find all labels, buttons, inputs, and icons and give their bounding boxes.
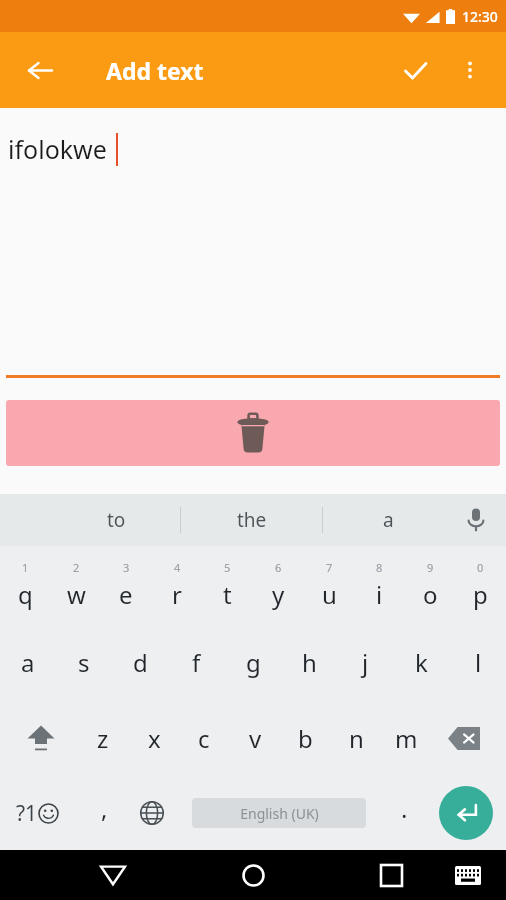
button[interactable]: x [129,700,179,776]
button[interactable]: s [59,624,109,700]
staticText: English (UK) [240,804,319,823]
button[interactable]: Change keyboard language [128,778,176,848]
button[interactable]: k [396,624,446,700]
button[interactable]: ifolokwe [0,108,506,384]
staticText: 9 [427,560,434,575]
staticText: 3 [123,560,130,575]
staticText: k [415,646,428,679]
button[interactable]: l [453,624,503,700]
staticText: i [376,578,383,611]
staticText: h [302,646,317,679]
staticText: 6 [275,560,282,575]
staticText: t [223,578,232,611]
button[interactable]: Voice input [452,496,500,544]
button[interactable]: v [230,700,280,776]
staticText: the [237,507,267,533]
staticText: u [322,578,337,611]
button[interactable]: the [197,494,307,546]
button[interactable]: d [115,624,165,700]
staticText: d [133,646,148,679]
staticText: x [148,722,161,755]
button[interactable]: Enter [439,786,493,840]
button[interactable]: g [228,624,278,700]
staticText: n [349,722,364,755]
staticText: r [172,578,182,611]
staticText: m [395,722,418,755]
button[interactable]: h [284,624,334,700]
button[interactable]: z [78,700,128,776]
staticText: 5 [224,560,231,575]
staticText: g [246,646,261,679]
button[interactable]: Back [86,850,140,900]
button[interactable]: 0 [455,546,505,624]
staticText: z [97,722,109,755]
staticText: , [101,792,108,825]
staticText: p [473,578,488,611]
button[interactable]: 7 [304,546,354,624]
button[interactable]: 8 [354,546,404,624]
staticText: c [198,722,210,755]
staticText: j [362,646,369,679]
button[interactable]: Shift [15,700,67,776]
button[interactable]: 9 [405,546,455,624]
staticText: l [475,646,482,679]
staticText: 12:30 [462,7,498,26]
button[interactable]: 4 [152,546,202,624]
staticText: v [249,722,262,755]
staticText: 8 [376,560,383,575]
button[interactable]: Switch keyboard [443,850,493,900]
button[interactable]: 1 [0,546,50,624]
staticText: ?1 [16,799,38,828]
button[interactable]: a [333,494,443,546]
staticText: to [107,507,126,533]
button[interactable]: c [179,700,229,776]
button[interactable]: Symbols and emoji [4,778,70,848]
staticText: . [401,792,408,825]
button[interactable]: a [3,624,53,700]
staticText: 0 [477,560,484,575]
button[interactable]: m [381,700,431,776]
button[interactable]: f [171,624,221,700]
staticText: 2 [73,560,80,575]
button[interactable]: 2 [51,546,101,624]
button[interactable]: Back [14,44,66,96]
staticText: 7 [326,560,333,575]
staticText: f [192,646,201,679]
staticText: 1 [22,560,29,575]
button[interactable]: b [280,700,330,776]
staticText: ifolokwe [8,132,107,166]
button[interactable]: Delete [6,400,500,466]
staticText: Add text [106,55,204,86]
staticText: w [67,578,86,611]
staticText: 4 [174,560,181,575]
button[interactable]: . [382,778,426,848]
button[interactable]: English (UK) [192,798,366,828]
button[interactable]: n [331,700,381,776]
staticText: q [18,578,33,611]
button[interactable]: Recent apps [364,850,418,900]
staticText: a [21,646,35,679]
button[interactable]: Backspace [438,700,490,776]
staticText: o [423,578,438,611]
button[interactable]: , [82,778,126,848]
staticText: a [383,507,394,533]
button[interactable]: 5 [202,546,252,624]
button[interactable]: j [340,624,390,700]
staticText: b [298,722,313,755]
button[interactable]: More options [444,44,496,96]
button[interactable]: 3 [101,546,151,624]
staticText: s [78,646,90,679]
staticText: y [272,578,285,611]
button[interactable]: Home [226,850,280,900]
staticText: e [119,578,133,611]
button[interactable]: to [61,494,171,546]
button[interactable]: 6 [253,546,303,624]
button[interactable]: Done [389,44,441,96]
